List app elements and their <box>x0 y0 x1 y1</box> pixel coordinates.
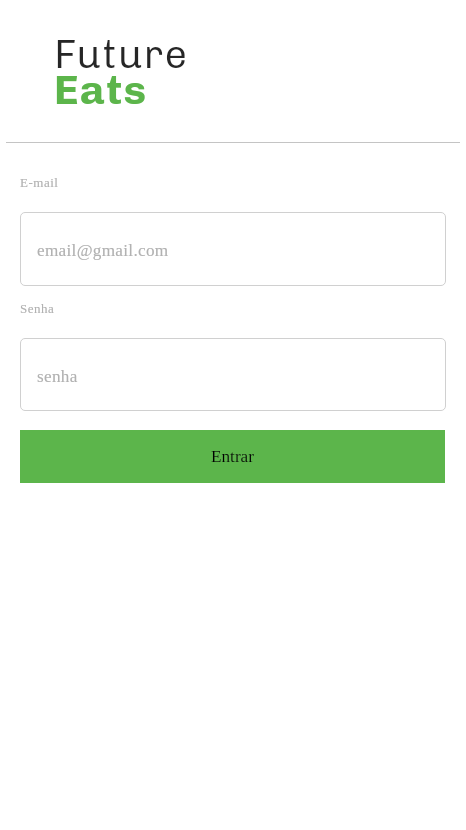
staticText: email@gmail.com <box>37 241 169 260</box>
staticText: E-mail <box>20 174 59 190</box>
button[interactable]: Senha input field <box>20 338 446 411</box>
staticText: Eats <box>54 68 148 114</box>
staticText: senha <box>37 367 78 386</box>
staticText: Future <box>54 32 189 78</box>
button[interactable]: E-mail input field <box>20 212 446 286</box>
button[interactable]: Entrar <box>20 430 445 483</box>
staticText: Senha <box>20 300 55 316</box>
staticText: Entrar <box>211 447 254 466</box>
